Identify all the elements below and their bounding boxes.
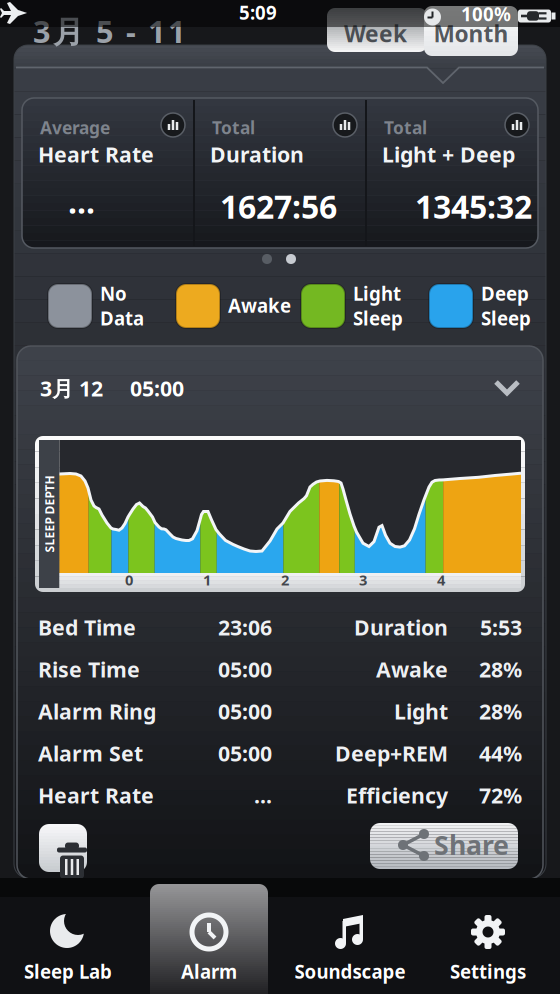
staticText: 05:00 [218,655,272,683]
staticText: Light Sleep [353,281,403,331]
staticText: 2 [281,570,289,589]
staticText: 05:00 [130,374,184,402]
staticText: Total [384,116,427,139]
staticText: Deep+REM [335,739,448,767]
staticText: Alarm [181,959,237,984]
staticText: 1345:32 [415,185,532,227]
staticText: Light + Deep [382,140,515,168]
staticText: 0 [125,570,133,589]
staticText: Alarm Set [38,739,143,767]
staticText: Heart Rate [38,140,154,168]
button[interactable]: Month [424,6,518,56]
staticText: Total [212,116,255,139]
staticText: Heart Rate [38,781,154,809]
staticText: 28% [479,697,522,725]
staticText: No Data [100,281,144,331]
staticText: 23:06 [218,613,272,641]
staticText: Month [433,18,508,49]
button[interactable]: Soundscape [284,897,416,994]
staticText: Efficiency [346,781,448,809]
button[interactable]: Alarm [143,897,275,994]
staticText: Awake [228,293,291,318]
staticText: Week [344,18,407,49]
button[interactable]: Chart [333,113,357,137]
staticText: 4 [437,570,445,589]
staticText: 100% [461,1,511,26]
staticText: 1 [203,570,211,589]
staticText: 72% [479,781,522,809]
staticText: Bed Time [38,613,136,641]
staticText: Light [394,697,448,725]
staticText: Soundscape [294,959,405,984]
staticText: Settings [450,959,526,984]
staticText: SLEEP DEPTH [11,506,88,522]
staticText: Duration [210,140,304,168]
button[interactable]: Delete [39,824,87,872]
button[interactable]: Sleep Lab [2,897,134,994]
staticText: 3月 5 - 11 [33,11,186,51]
staticText: 05:00 [218,739,272,767]
staticText: ... [68,180,95,222]
staticText: 44% [479,739,522,767]
button[interactable]: Chart [505,113,529,137]
staticText: ... [254,781,272,809]
staticText: Average [40,116,110,139]
button[interactable]: Toggle day details [20,350,540,420]
staticText: Share [434,827,509,862]
staticText: 5:53 [480,613,522,641]
staticText: 5:09 [239,0,277,25]
staticText: 28% [479,655,522,683]
staticText: Rise Time [38,655,140,683]
staticText: 1627:56 [220,185,337,227]
staticText: 3月 12 [40,374,103,402]
staticText: Deep Sleep [481,281,531,331]
staticText: Duration [354,613,448,641]
button[interactable]: Chart [161,113,185,137]
staticText: Alarm Ring [38,697,156,725]
button[interactable]: Week [327,8,427,52]
staticText: Sleep Lab [24,959,112,984]
staticText: 05:00 [218,697,272,725]
staticText: Awake [376,655,448,683]
staticText: 3 [359,570,367,589]
button[interactable]: Share [370,823,518,869]
button[interactable]: Settings [422,897,554,994]
